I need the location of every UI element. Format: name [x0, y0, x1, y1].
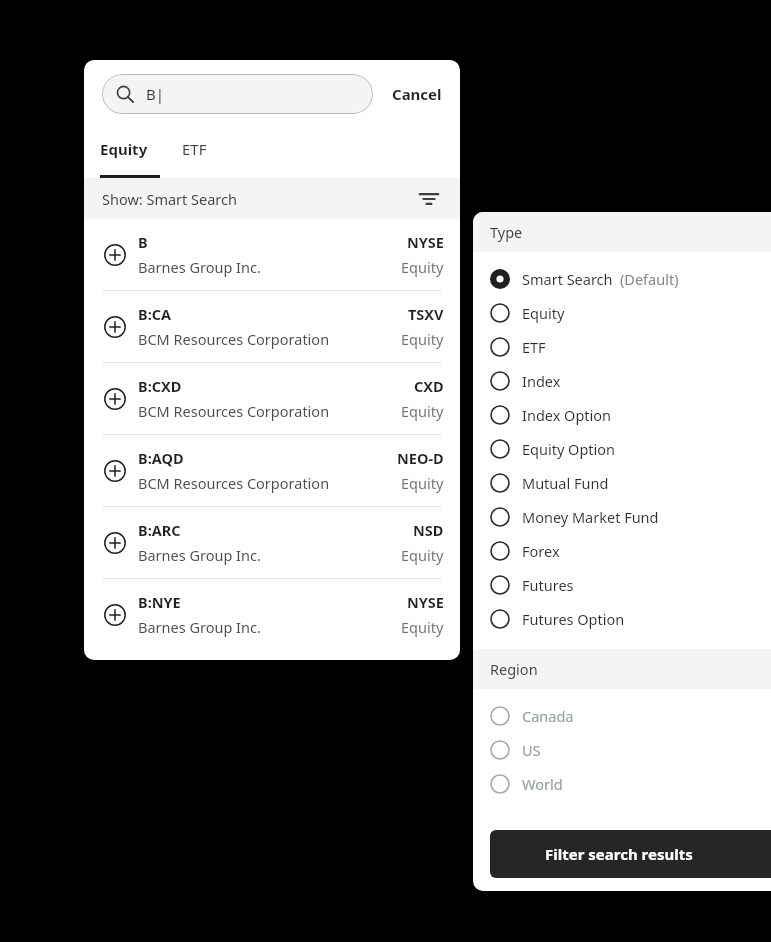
other: Add B:NYE	[102, 602, 128, 628]
staticText: Filter search results	[545, 844, 693, 864]
staticText: ETF	[522, 337, 546, 357]
staticText: NEO-D	[397, 448, 444, 468]
staticText: NYSE	[407, 592, 444, 612]
staticText: Futures	[522, 575, 574, 595]
button[interactable]: Add B:ARC	[84, 507, 460, 578]
button[interactable]: US	[473, 733, 771, 767]
staticText: CXD	[414, 376, 444, 396]
staticText: Forex	[522, 541, 560, 561]
button[interactable]: Mutual Fund	[473, 466, 771, 500]
button[interactable]: Add B:AQD	[84, 435, 460, 506]
button[interactable]: Add B:CXD	[84, 363, 460, 434]
staticText: Barnes Group Inc.	[138, 257, 261, 277]
staticText: Equity Option	[522, 439, 616, 459]
staticText: Equity	[401, 473, 444, 493]
staticText: NSD	[413, 520, 444, 540]
button[interactable]: Equity Option	[473, 432, 771, 466]
staticText: B|	[146, 84, 165, 104]
staticText: Type	[490, 222, 523, 242]
staticText: Equity	[100, 139, 148, 159]
staticText: Equity	[401, 617, 444, 637]
staticText: Index	[522, 371, 561, 391]
staticText: Cancel	[392, 84, 442, 104]
staticText: B:CXD	[138, 376, 182, 396]
staticText: Equity	[401, 329, 444, 349]
other: Add B:ARC	[102, 530, 128, 556]
staticText: (Default)	[620, 269, 679, 289]
button[interactable]: Smart Search	[473, 262, 771, 296]
staticText: B:ARC	[138, 520, 181, 540]
button[interactable]: Equity	[473, 296, 771, 330]
button[interactable]: Add B	[84, 219, 460, 290]
staticText: Equity	[522, 303, 565, 323]
staticText: BCM Resources Corporation	[138, 329, 330, 349]
staticText: TSXV	[408, 304, 444, 324]
staticText: Equity	[401, 257, 444, 277]
staticText: NYSE	[407, 232, 444, 252]
button[interactable]: Canada	[473, 699, 771, 733]
button[interactable]: Forex	[473, 534, 771, 568]
button[interactable]: ETF	[160, 127, 228, 178]
button[interactable]: Add B:NYE	[84, 579, 460, 650]
staticText: ETF	[182, 139, 207, 159]
staticText: Region	[490, 659, 538, 679]
staticText: B	[138, 232, 148, 252]
other: Add B:AQD	[102, 458, 128, 484]
staticText: Canada	[522, 706, 574, 726]
button[interactable]: World	[473, 767, 771, 801]
button[interactable]: Money Market Fund	[473, 500, 771, 534]
staticText: B:CA	[138, 304, 172, 324]
button[interactable]: Add B:CA	[84, 291, 460, 362]
button[interactable]: B|	[102, 74, 373, 114]
button[interactable]: Futures	[473, 568, 771, 602]
button[interactable]: Index	[473, 364, 771, 398]
staticText: Barnes Group Inc.	[138, 617, 261, 637]
staticText: US	[522, 740, 541, 760]
button[interactable]: Filter search results	[490, 830, 771, 878]
staticText: World	[522, 774, 563, 794]
staticText: Equity	[401, 401, 444, 421]
staticText: Futures Option	[522, 609, 625, 629]
button[interactable]: Equity	[84, 127, 160, 178]
staticText: BCM Resources Corporation	[138, 473, 330, 493]
staticText: Mutual Fund	[522, 473, 609, 493]
staticText: Show: Smart Search	[102, 189, 237, 209]
other: Add B	[102, 242, 128, 268]
staticText: B:AQD	[138, 448, 184, 468]
staticText: B:NYE	[138, 592, 181, 612]
button[interactable]: Cancel	[390, 76, 444, 112]
staticText: Equity	[401, 545, 444, 565]
staticText: Smart Search	[522, 269, 613, 289]
staticText: Money Market Fund	[522, 507, 659, 527]
button[interactable]: Index Option	[473, 398, 771, 432]
button[interactable]: Futures Option	[473, 602, 771, 636]
other: Add B:CA	[102, 314, 128, 340]
other: Add B:CXD	[102, 386, 128, 412]
staticText: BCM Resources Corporation	[138, 401, 330, 421]
button[interactable]: ETF	[473, 330, 771, 364]
staticText: Index Option	[522, 405, 612, 425]
staticText: Barnes Group Inc.	[138, 545, 261, 565]
button[interactable]: Filter	[414, 184, 444, 214]
